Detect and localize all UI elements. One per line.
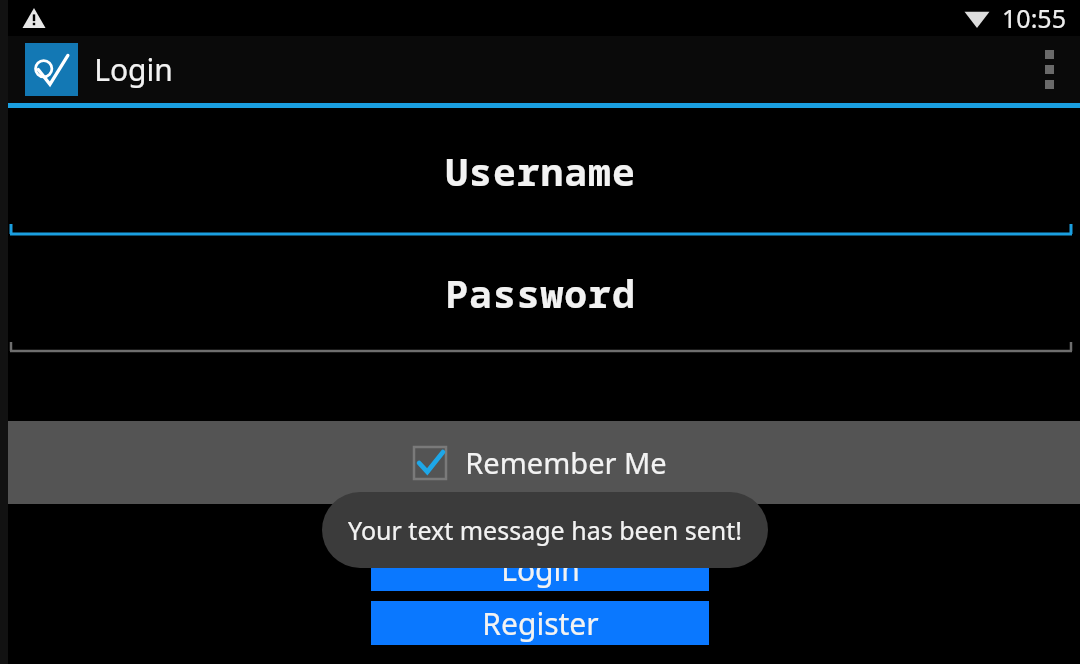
button[interactable]: Login <box>371 547 709 591</box>
staticText: Remember Me <box>465 443 667 482</box>
staticText: Login <box>501 549 580 590</box>
staticText: Username <box>445 145 636 197</box>
button[interactable]: More options <box>1018 36 1080 103</box>
button[interactable]: Register <box>371 601 709 645</box>
staticText: Password <box>445 267 636 319</box>
staticText: 10:55 <box>1002 1 1066 35</box>
button[interactable]: Remember Me <box>413 443 667 482</box>
staticText: Login <box>94 49 173 90</box>
button[interactable]: Password <box>0 237 1080 363</box>
button[interactable]: Username <box>0 108 1080 237</box>
staticText: Your text message has been sent! <box>348 513 742 547</box>
staticText: Register <box>482 603 599 644</box>
